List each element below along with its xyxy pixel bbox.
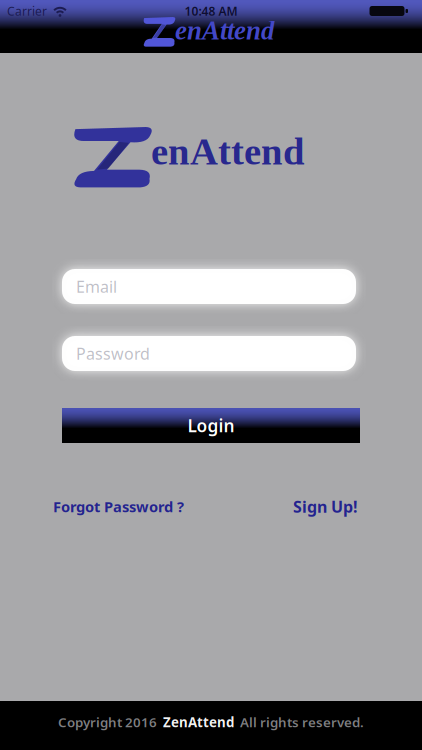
staticText: enAttend	[151, 130, 305, 173]
staticText: Forgot Password ?	[53, 497, 184, 516]
staticText: Login	[187, 414, 234, 437]
staticText: enAttend	[175, 15, 274, 45]
staticText: 10:48 AM	[184, 3, 237, 19]
staticText: Carrier	[7, 3, 47, 19]
staticText: All rights reserved.	[234, 713, 364, 731]
staticText: ZenAttend	[163, 713, 234, 731]
staticText: Copyright 2016	[58, 713, 163, 731]
staticText: Sign Up!	[293, 496, 358, 517]
staticText: Password	[76, 343, 150, 364]
staticText: Email	[76, 276, 117, 297]
